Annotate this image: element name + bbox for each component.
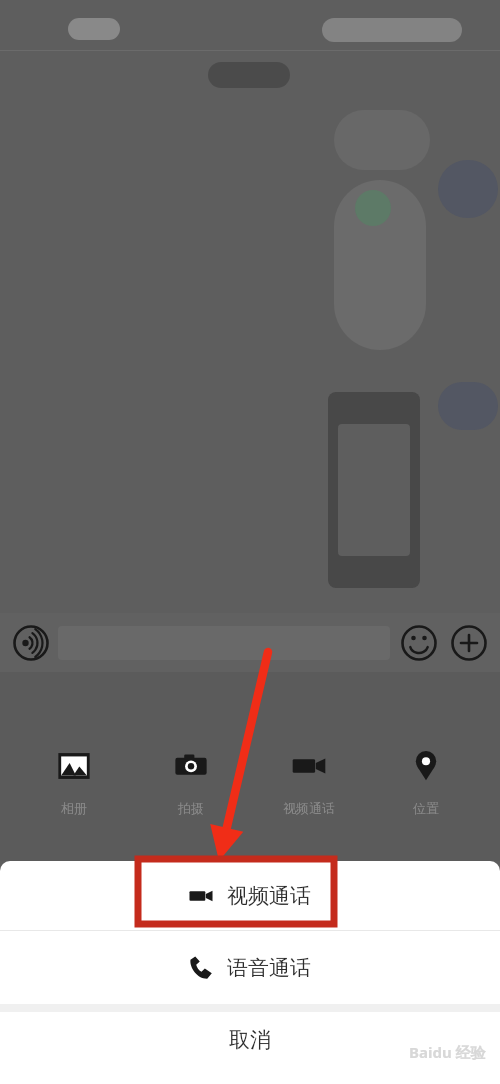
button[interactable]: 语音通话 (0, 931, 500, 1004)
button[interactable] (58, 626, 390, 660)
button[interactable]: More (451, 625, 487, 661)
button[interactable]: 视频通话 (266, 740, 352, 816)
staticText: 取消 (229, 1027, 271, 1053)
button[interactable]: 取消 (0, 1012, 500, 1084)
staticText: 语音通话 (227, 955, 311, 981)
staticText: 相册 (61, 800, 87, 816)
button[interactable]: 拍摄 (148, 740, 234, 816)
staticText: 视频通话 (227, 883, 311, 909)
staticText: 视频通话 (283, 800, 335, 816)
button[interactable]: 相册 (31, 740, 117, 816)
button[interactable]: Voice input (13, 625, 49, 661)
button[interactable]: 视频通话 (0, 861, 500, 930)
button[interactable]: 位置 (383, 740, 469, 816)
staticText: Baidu 经验 (409, 1042, 486, 1062)
button[interactable]: Emoji (401, 625, 437, 661)
staticText: 位置 (413, 800, 439, 816)
staticText: 拍摄 (178, 800, 204, 816)
